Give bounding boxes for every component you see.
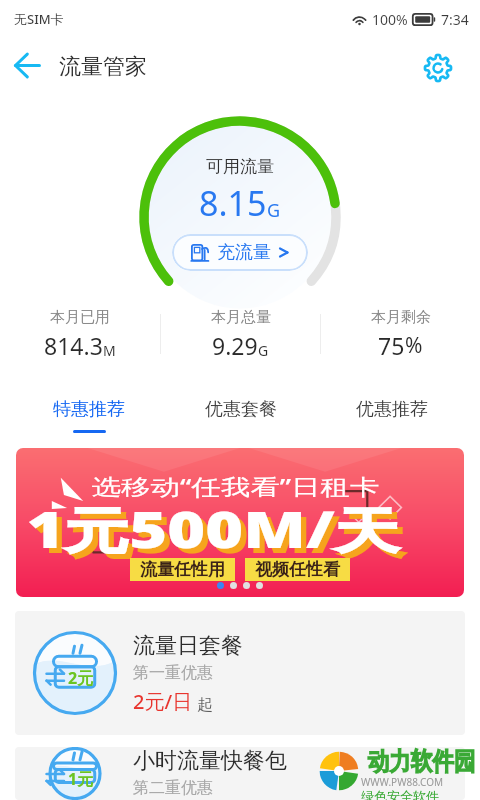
staticText: 流量管家 bbox=[59, 53, 147, 81]
staticText: 流量日套餐 bbox=[133, 632, 243, 660]
staticText: 7:34 bbox=[441, 10, 469, 29]
staticText: 特惠推荐 bbox=[53, 398, 125, 421]
staticText: 优惠套餐 bbox=[205, 398, 277, 421]
staticText: 本月剩余 bbox=[371, 308, 431, 327]
staticText: 流量任性用 bbox=[140, 559, 225, 580]
button[interactable]: 优惠推荐 bbox=[316, 380, 467, 448]
button[interactable]: 优惠套餐 bbox=[165, 380, 316, 448]
staticText: 9.29 bbox=[212, 330, 258, 361]
staticText: 100% bbox=[372, 10, 408, 29]
button[interactable]: 特惠推荐 bbox=[13, 380, 165, 448]
staticText: G bbox=[267, 198, 281, 223]
staticText: 绿色安全软件 bbox=[361, 788, 439, 800]
staticText: 2元/日 bbox=[133, 688, 193, 715]
staticText: 小时流量快餐包 bbox=[133, 747, 287, 775]
staticText: 814.3 bbox=[44, 330, 103, 361]
staticText: WWW.PW88.COM bbox=[361, 775, 444, 789]
button[interactable]: Settings bbox=[416, 43, 460, 87]
staticText: 第一重优惠 bbox=[133, 663, 213, 683]
staticText: G bbox=[258, 341, 269, 360]
staticText: 优惠推荐 bbox=[356, 398, 428, 421]
staticText: 1元500M/天 bbox=[26, 496, 400, 564]
staticText: 充流量 bbox=[217, 241, 271, 264]
button[interactable]: 1元 bbox=[15, 747, 465, 800]
staticText: 1元 bbox=[68, 768, 94, 790]
staticText: 无SIM卡 bbox=[14, 10, 64, 28]
staticText: 选移动“任我看”日租卡 bbox=[91, 471, 379, 501]
staticText: M bbox=[103, 341, 116, 360]
staticText: 可用流量 bbox=[206, 156, 274, 177]
button[interactable]: 2元 bbox=[15, 611, 465, 735]
staticText: 1元500M/天 bbox=[32, 501, 406, 569]
staticText: % bbox=[405, 331, 423, 360]
button[interactable]: 充流量 bbox=[172, 234, 308, 271]
staticText: 2元 bbox=[68, 667, 94, 689]
staticText: 视频任性看 bbox=[255, 559, 340, 580]
staticText: 第二重优惠 bbox=[133, 778, 213, 798]
button[interactable]: Back bbox=[4, 43, 48, 87]
staticText: 8.15 bbox=[199, 180, 267, 226]
staticText: 本月已用 bbox=[50, 308, 110, 327]
button[interactable]: 选移动“任我看”日租卡 bbox=[16, 448, 464, 597]
staticText: 75 bbox=[378, 330, 405, 361]
staticText: 起 bbox=[193, 693, 214, 715]
staticText: 本月总量 bbox=[211, 308, 271, 327]
staticText: 动力软件园 bbox=[368, 746, 475, 777]
